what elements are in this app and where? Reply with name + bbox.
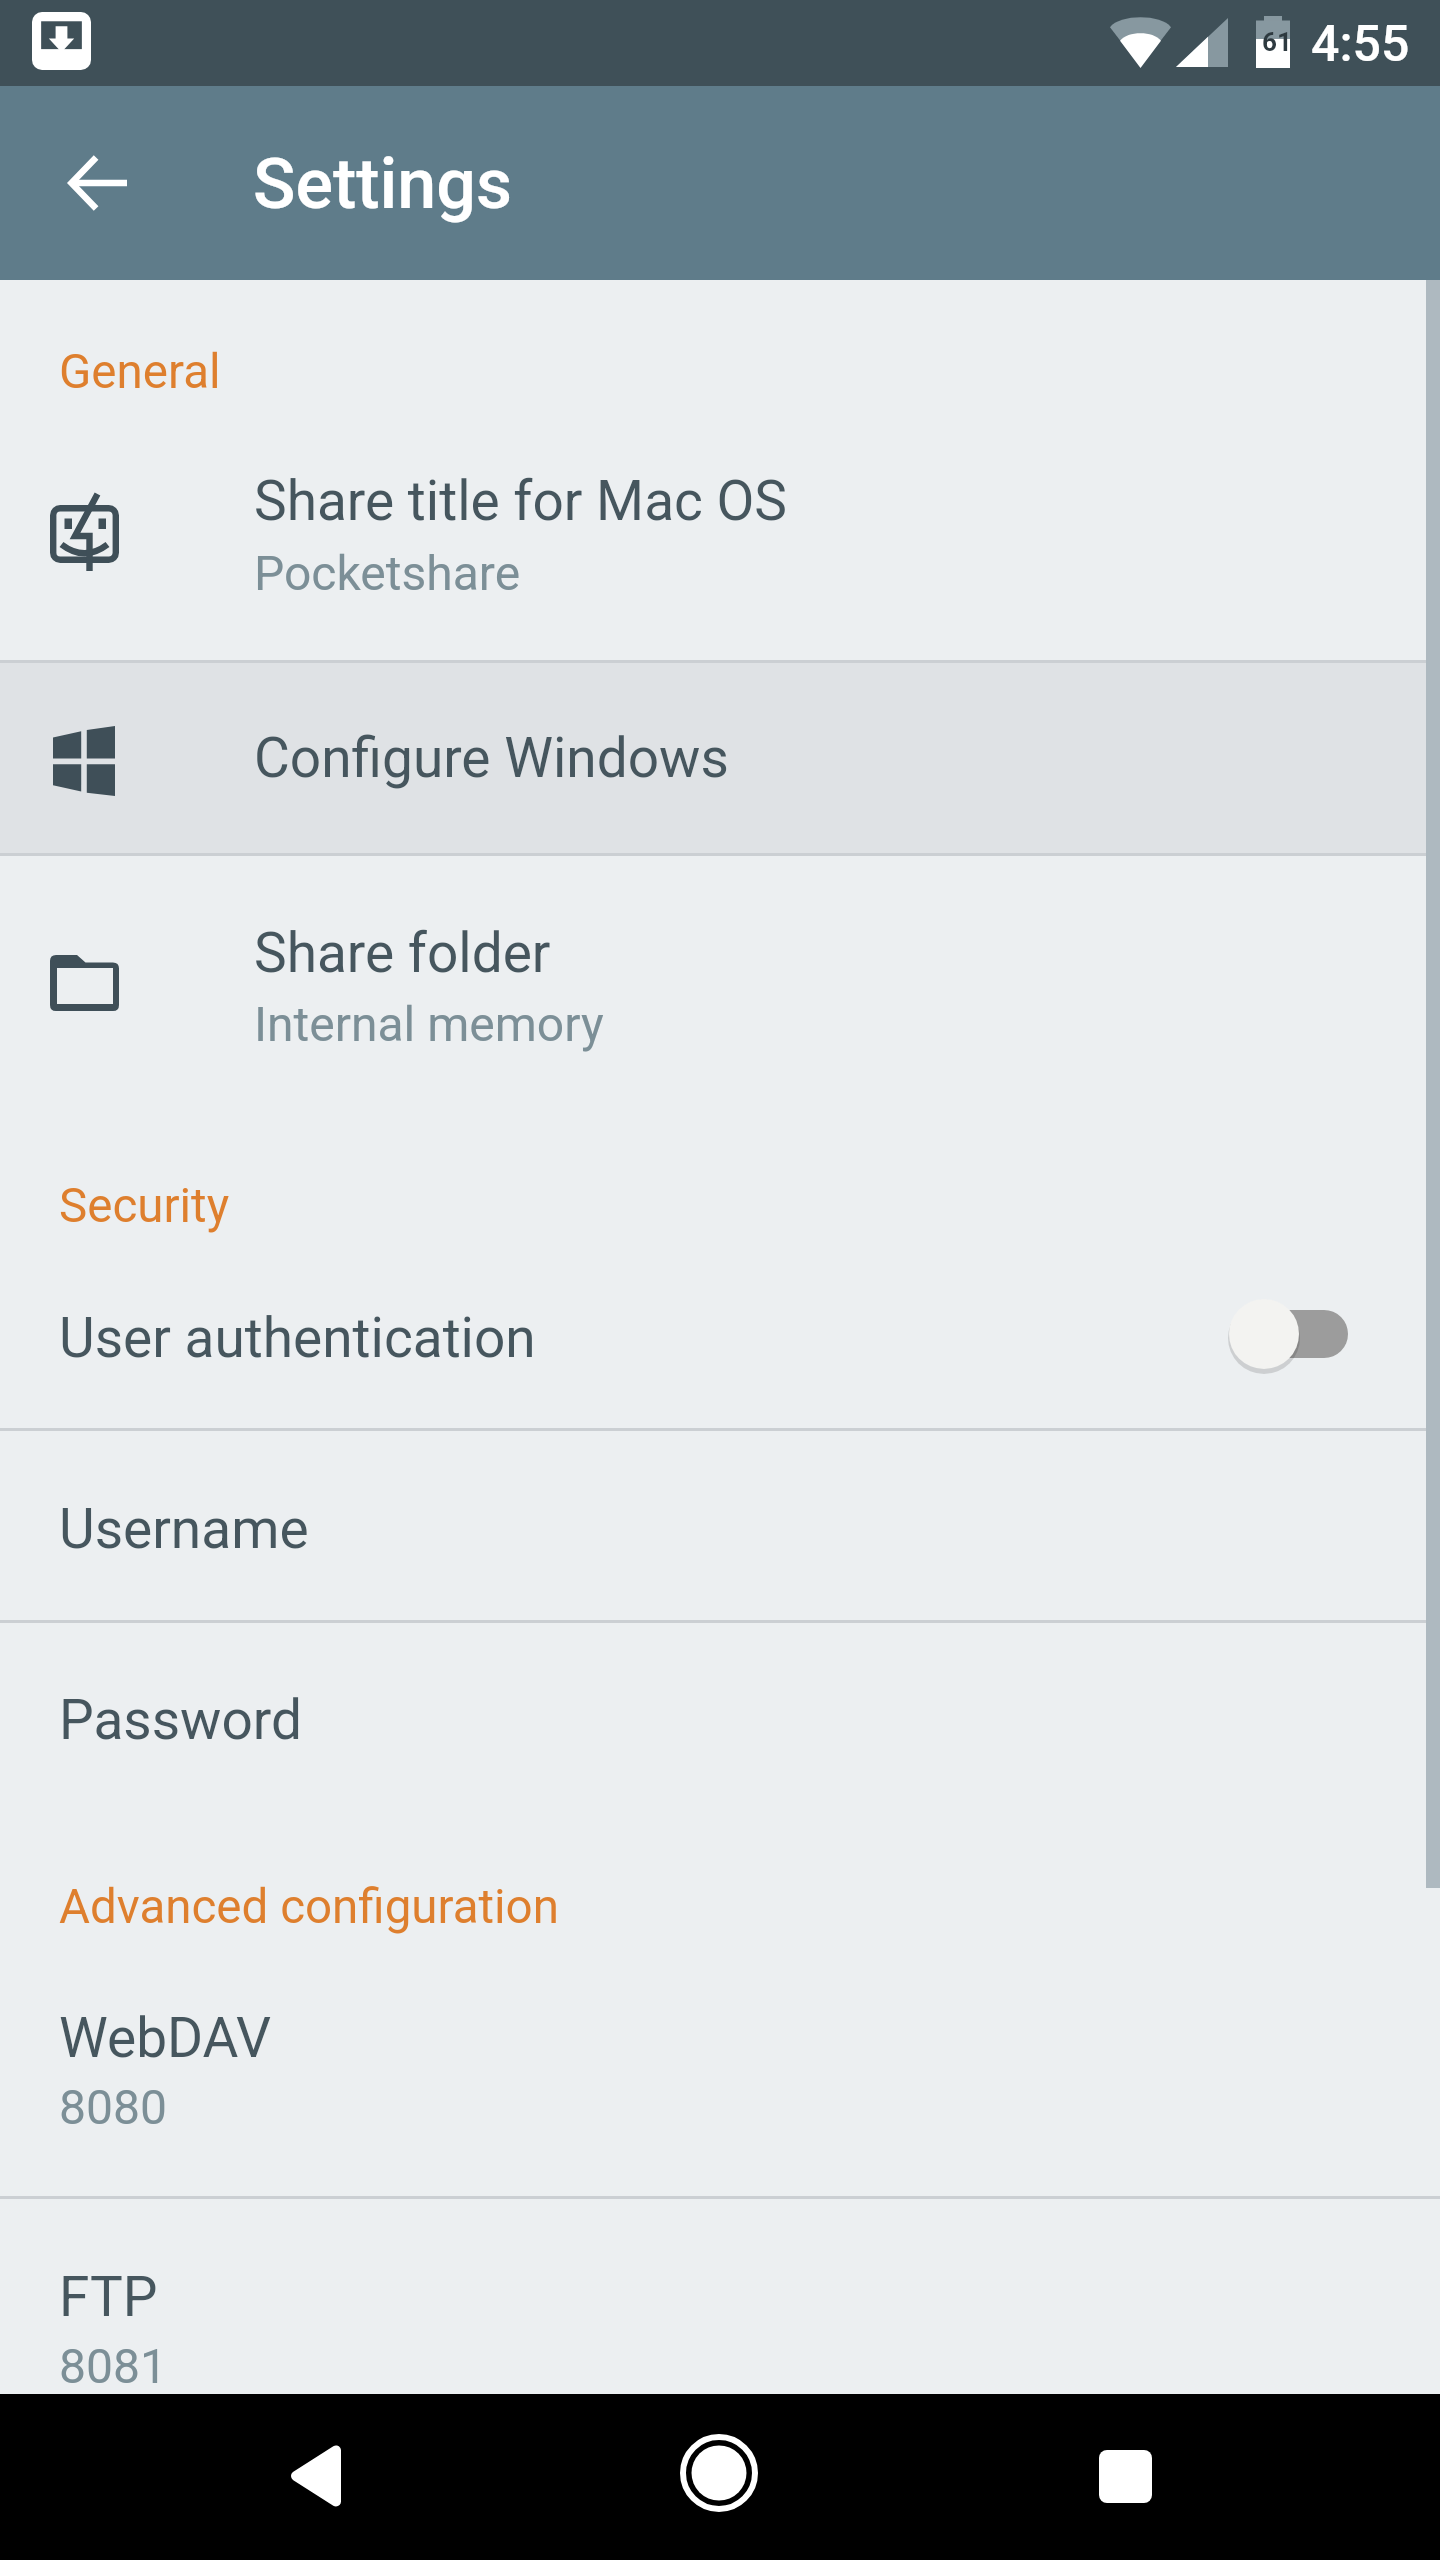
button[interactable] [0,1431,1440,1620]
button[interactable]: User authentication toggle [1210,1264,1390,1404]
staticText: Advanced configuration [59,1879,559,1935]
button[interactable]: Recents [1065,2416,1185,2536]
button[interactable]: Back [55,139,143,227]
button[interactable] [0,404,1440,660]
staticText: WebDAV [59,2006,272,2070]
staticText: 8081 [59,2338,167,2394]
button[interactable] [0,1239,1440,1428]
staticText: 4:55 [1311,15,1410,74]
staticText: Configure Windows [254,726,729,790]
staticText: General [59,344,221,400]
staticText: Pocketshare [254,545,521,601]
button[interactable] [0,1941,1440,2197]
button[interactable] [0,1623,1440,1812]
button[interactable] [0,663,1440,853]
staticText: FTP [59,2265,158,2329]
staticText: Password [59,1688,302,1752]
button[interactable]: Back [255,2416,375,2536]
staticText: Share title for Mac OS [254,469,787,533]
staticText: Security [59,1178,230,1234]
staticText: 8080 [59,2079,167,2135]
staticText: Internal memory [254,996,604,1052]
staticText: Share folder [254,921,551,985]
staticText: 61 [1262,27,1292,57]
button[interactable] [0,856,1440,1112]
button[interactable] [0,2199,1440,2394]
staticText: Username [59,1497,309,1561]
staticText: User authentication [59,1306,536,1370]
button[interactable]: Home [659,2413,779,2533]
staticText: Settings [253,143,513,225]
